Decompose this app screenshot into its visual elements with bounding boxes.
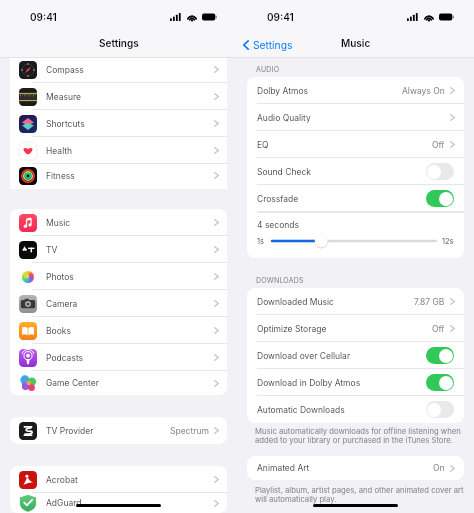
staticText: Music [341,37,371,49]
staticText: 7.87 GB [414,297,445,307]
staticText: On [433,463,445,473]
staticText: Game Center [46,378,99,388]
staticText: AdGuard [46,498,82,508]
staticText: Sound Check [257,167,311,177]
staticText: Books [46,326,71,336]
button[interactable]: Podcasts [10,344,227,371]
button[interactable]: Health [10,137,227,164]
staticText: Music automatically downloads for offlin… [255,427,466,445]
button[interactable]: EQ [247,131,464,158]
staticText: Spectrum [170,426,209,436]
staticText: Animated Art [257,463,310,473]
other: Sound Check off [426,163,454,180]
staticText: Measure [46,92,82,102]
button[interactable]: Fitness [10,164,227,187]
staticText: Download over Cellular [257,351,351,361]
staticText: Off [432,324,445,334]
staticText: Photos [46,272,74,282]
staticText: Camera [46,299,78,309]
staticText: Dolby Atmos [257,86,309,96]
button[interactable]: TV Provider [10,417,227,444]
button[interactable]: Photos [10,263,227,290]
button[interactable]: Acrobat [10,466,227,493]
button[interactable]: Game Center [10,371,227,395]
staticText: Music [46,218,71,228]
staticText: Off [432,140,445,150]
button[interactable]: Books [10,317,227,344]
staticText: 1s [257,237,265,246]
button[interactable]: Download over Cellular [247,342,464,369]
other: Download in Dolby Atmos on [426,374,454,391]
staticText: EQ [257,140,269,150]
staticText: 09:41 [267,11,294,23]
button[interactable]: Measure [10,83,227,110]
button[interactable]: Sound Check [247,158,464,185]
staticText: Always On [402,86,445,96]
staticText: Optimize Storage [257,324,327,334]
staticText: Downloaded Music [257,297,334,307]
button[interactable]: Download in Dolby Atmos [247,369,464,396]
staticText: Podcasts [46,353,84,363]
staticText: Automatic Downloads [257,405,345,415]
staticText: Download in Dolby Atmos [257,378,361,388]
staticText: Crossfade [257,194,299,204]
button[interactable]: Crossfade [247,185,464,212]
staticText: Audio Quality [257,113,311,123]
other: Automatic Downloads off [426,401,454,418]
staticText: 4 seconds [257,220,299,230]
button[interactable]: Music [10,209,227,236]
staticText: Acrobat [46,475,78,485]
button[interactable]: Camera [10,290,227,317]
button[interactable]: Audio Quality [247,104,464,131]
other: Crossfade on [426,190,454,207]
staticText: Shortcuts [46,119,85,129]
button[interactable]: Shortcuts [10,110,227,137]
staticText: Settings [99,37,139,49]
button[interactable]: Downloaded Music [247,288,464,315]
button[interactable]: Animated Art [247,456,464,480]
staticText: TV [46,245,58,255]
button[interactable]: Automatic Downloads [247,396,464,423]
staticText: 09:41 [30,11,57,23]
staticText: 12s [442,237,454,246]
other: Download over Cellular on [426,347,454,364]
staticText: Settings [253,39,293,51]
button[interactable]: TV [10,236,227,263]
staticText: TV Provider [46,426,94,436]
staticText: AUDIO [256,65,280,73]
staticText: Health [46,146,73,156]
staticText: Fitness [46,171,75,181]
staticText: DOWNLOADS [256,276,304,284]
staticText: Playlist, album, artist pages, and other… [255,486,466,504]
button[interactable]: AdGuard [10,493,227,513]
button[interactable]: Settings [237,37,299,53]
staticText: Compass [46,65,84,75]
button[interactable]: Compass [10,58,227,83]
button[interactable]: Optimize Storage [247,315,464,342]
button[interactable]: Dolby Atmos [247,77,464,104]
